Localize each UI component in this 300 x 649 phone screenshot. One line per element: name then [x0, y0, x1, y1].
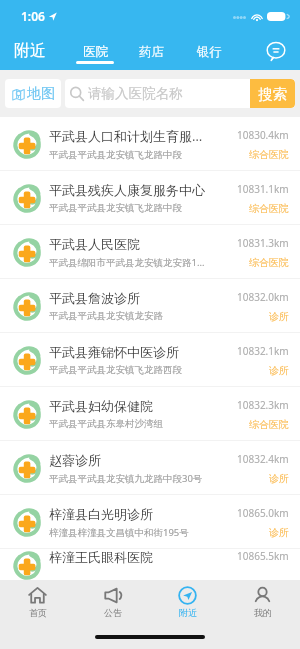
staticText: 平武县平武县龙安镇飞龙路中段: [49, 149, 182, 161]
button[interactable]: 公告: [75, 580, 150, 624]
staticText: 银行: [197, 44, 222, 60]
button[interactable]: 平武县人民医院: [0, 225, 300, 279]
staticText: 平武县詹波诊所: [49, 290, 140, 306]
button[interactable]: 附近: [14, 41, 46, 61]
staticText: 附近: [14, 41, 46, 61]
staticText: 平武县平武县龙安镇九龙路中段30号: [49, 472, 203, 485]
button[interactable]: 平武县妇幼保健院: [0, 387, 300, 441]
button[interactable]: 平武县雍锦怀中医诊所: [0, 333, 300, 387]
staticText: 药店: [139, 44, 164, 60]
staticText: 10830.4km: [237, 128, 289, 142]
staticText: 医院: [83, 44, 108, 60]
button[interactable]: 地图: [5, 79, 61, 108]
staticText: 综合医院: [249, 418, 289, 431]
staticText: 平武县平武县龙安镇飞龙路西段: [49, 364, 182, 376]
staticText: 诊所: [269, 310, 289, 323]
staticText: 10832.0km: [237, 290, 289, 304]
staticText: 公告: [104, 607, 122, 618]
staticText: 10831.3km: [237, 236, 289, 250]
staticText: 10865.0km: [237, 506, 289, 520]
button[interactable]: 我的: [225, 580, 300, 624]
staticText: 诊所: [269, 472, 289, 485]
staticText: 平武县残疾人康复服务中心: [49, 182, 205, 198]
staticText: 搜索: [258, 85, 287, 103]
staticText: 首页: [29, 607, 47, 618]
button[interactable]: Messages: [263, 38, 289, 64]
staticText: 10832.4km: [237, 452, 289, 466]
staticText: 平武县妇幼保健院: [49, 398, 153, 414]
staticText: 综合医院: [249, 148, 289, 161]
staticText: 平武县人民医院: [49, 236, 140, 252]
staticText: 梓潼县梓潼县文昌镇中和街195号: [49, 526, 189, 539]
staticText: 平武县绵阳市平武县龙安镇龙安路1…: [49, 256, 205, 269]
button[interactable]: 银行: [188, 32, 230, 70]
button[interactable]: 赵蓉诊所: [0, 441, 300, 495]
staticText: 平武县人口和计划生育服…: [49, 127, 203, 145]
staticText: 平武县雍锦怀中医诊所: [49, 344, 179, 360]
button[interactable]: 药店: [130, 32, 172, 70]
staticText: 梓潼县白光明诊所: [49, 506, 153, 522]
button[interactable]: 平武县残疾人康复服务中心: [0, 171, 300, 225]
staticText: 综合医院: [249, 202, 289, 215]
staticText: 诊所: [269, 526, 289, 539]
button[interactable]: 梓潼王氏眼科医院: [0, 549, 300, 580]
staticText: 诊所: [269, 364, 289, 377]
staticText: 我的: [254, 607, 272, 618]
button[interactable]: 平武县詹波诊所: [0, 279, 300, 333]
button[interactable]: 平武县人口和计划生育服…: [0, 117, 300, 171]
staticText: 平武县平武县龙安镇龙安路: [49, 310, 163, 322]
button[interactable]: 搜索: [250, 79, 295, 108]
staticText: 10831.1km: [237, 182, 289, 196]
staticText: 地图: [27, 85, 55, 103]
button[interactable]: 首页: [0, 580, 75, 624]
staticText: 10832.3km: [237, 398, 289, 412]
staticText: 平武县平武县龙安镇飞龙路中段: [49, 202, 182, 214]
staticText: 综合医院: [249, 256, 289, 269]
staticText: 附近: [179, 607, 197, 618]
button[interactable]: 医院: [74, 32, 116, 70]
button[interactable]: 附近: [150, 580, 225, 624]
staticText: 请输入医院名称: [88, 85, 183, 102]
button[interactable]: 梓潼县白光明诊所: [0, 495, 300, 549]
staticText: 1:06: [21, 8, 45, 24]
staticText: 10832.1km: [237, 344, 289, 358]
staticText: 梓潼王氏眼科医院: [49, 549, 153, 565]
staticText: 赵蓉诊所: [49, 452, 101, 468]
staticText: 平武县平武县东皋村沙湾组: [49, 418, 163, 430]
staticText: 10865.5km: [237, 549, 289, 563]
